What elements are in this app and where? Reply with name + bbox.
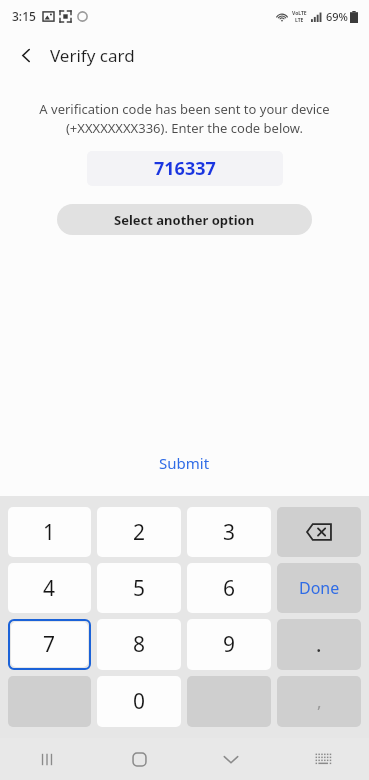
staticText: 5 <box>133 574 146 603</box>
staticText: 7 <box>43 630 56 659</box>
staticText: 2 <box>133 518 146 547</box>
staticText: , <box>317 690 322 713</box>
staticText: Select another option <box>114 211 255 229</box>
button[interactable]: 3 <box>187 507 271 557</box>
staticText: Verify card <box>50 44 135 67</box>
staticText: 8 <box>133 630 146 659</box>
button[interactable]: 6 <box>187 563 271 613</box>
staticText: 9 <box>223 630 236 659</box>
staticText: Submit <box>159 453 210 473</box>
button[interactable]: 9 <box>187 619 271 670</box>
staticText: LTE <box>295 17 304 24</box>
staticText: 3 <box>223 518 236 547</box>
button[interactable]: Back <box>8 37 44 73</box>
button[interactable]: Change keyboard <box>277 738 369 780</box>
staticText: 4 <box>43 574 56 603</box>
staticText: 716337 <box>154 156 216 181</box>
button[interactable]: 0 <box>97 676 181 727</box>
button[interactable]: Submit <box>141 448 228 478</box>
staticText: 6 <box>223 574 236 603</box>
button[interactable]: 1 <box>8 507 91 557</box>
button[interactable]: Home <box>93 738 185 780</box>
button[interactable]: Hide keyboard <box>185 738 277 780</box>
button[interactable]: Done <box>277 563 361 613</box>
button[interactable]: Recent apps <box>0 738 93 780</box>
button[interactable]: Period <box>277 619 361 670</box>
button[interactable]: 716337 <box>87 151 283 186</box>
button[interactable]: Backspace <box>277 507 361 557</box>
staticText: Done <box>299 577 340 599</box>
button[interactable]: 4 <box>8 563 91 613</box>
button[interactable]: 8 <box>97 619 181 670</box>
button[interactable]: Select another option <box>57 204 312 235</box>
button[interactable]: 2 <box>97 507 181 557</box>
staticText: 3:15 <box>12 8 36 24</box>
button[interactable]: 7 <box>11 622 88 667</box>
staticText: 1 <box>43 518 56 547</box>
staticText: A verification code has been sent to you… <box>39 100 330 137</box>
staticText: 69% <box>326 9 348 24</box>
button[interactable]: 5 <box>97 563 181 613</box>
staticText: VoLTE <box>292 10 307 17</box>
staticText: . <box>316 631 322 658</box>
staticText: 0 <box>133 687 146 716</box>
